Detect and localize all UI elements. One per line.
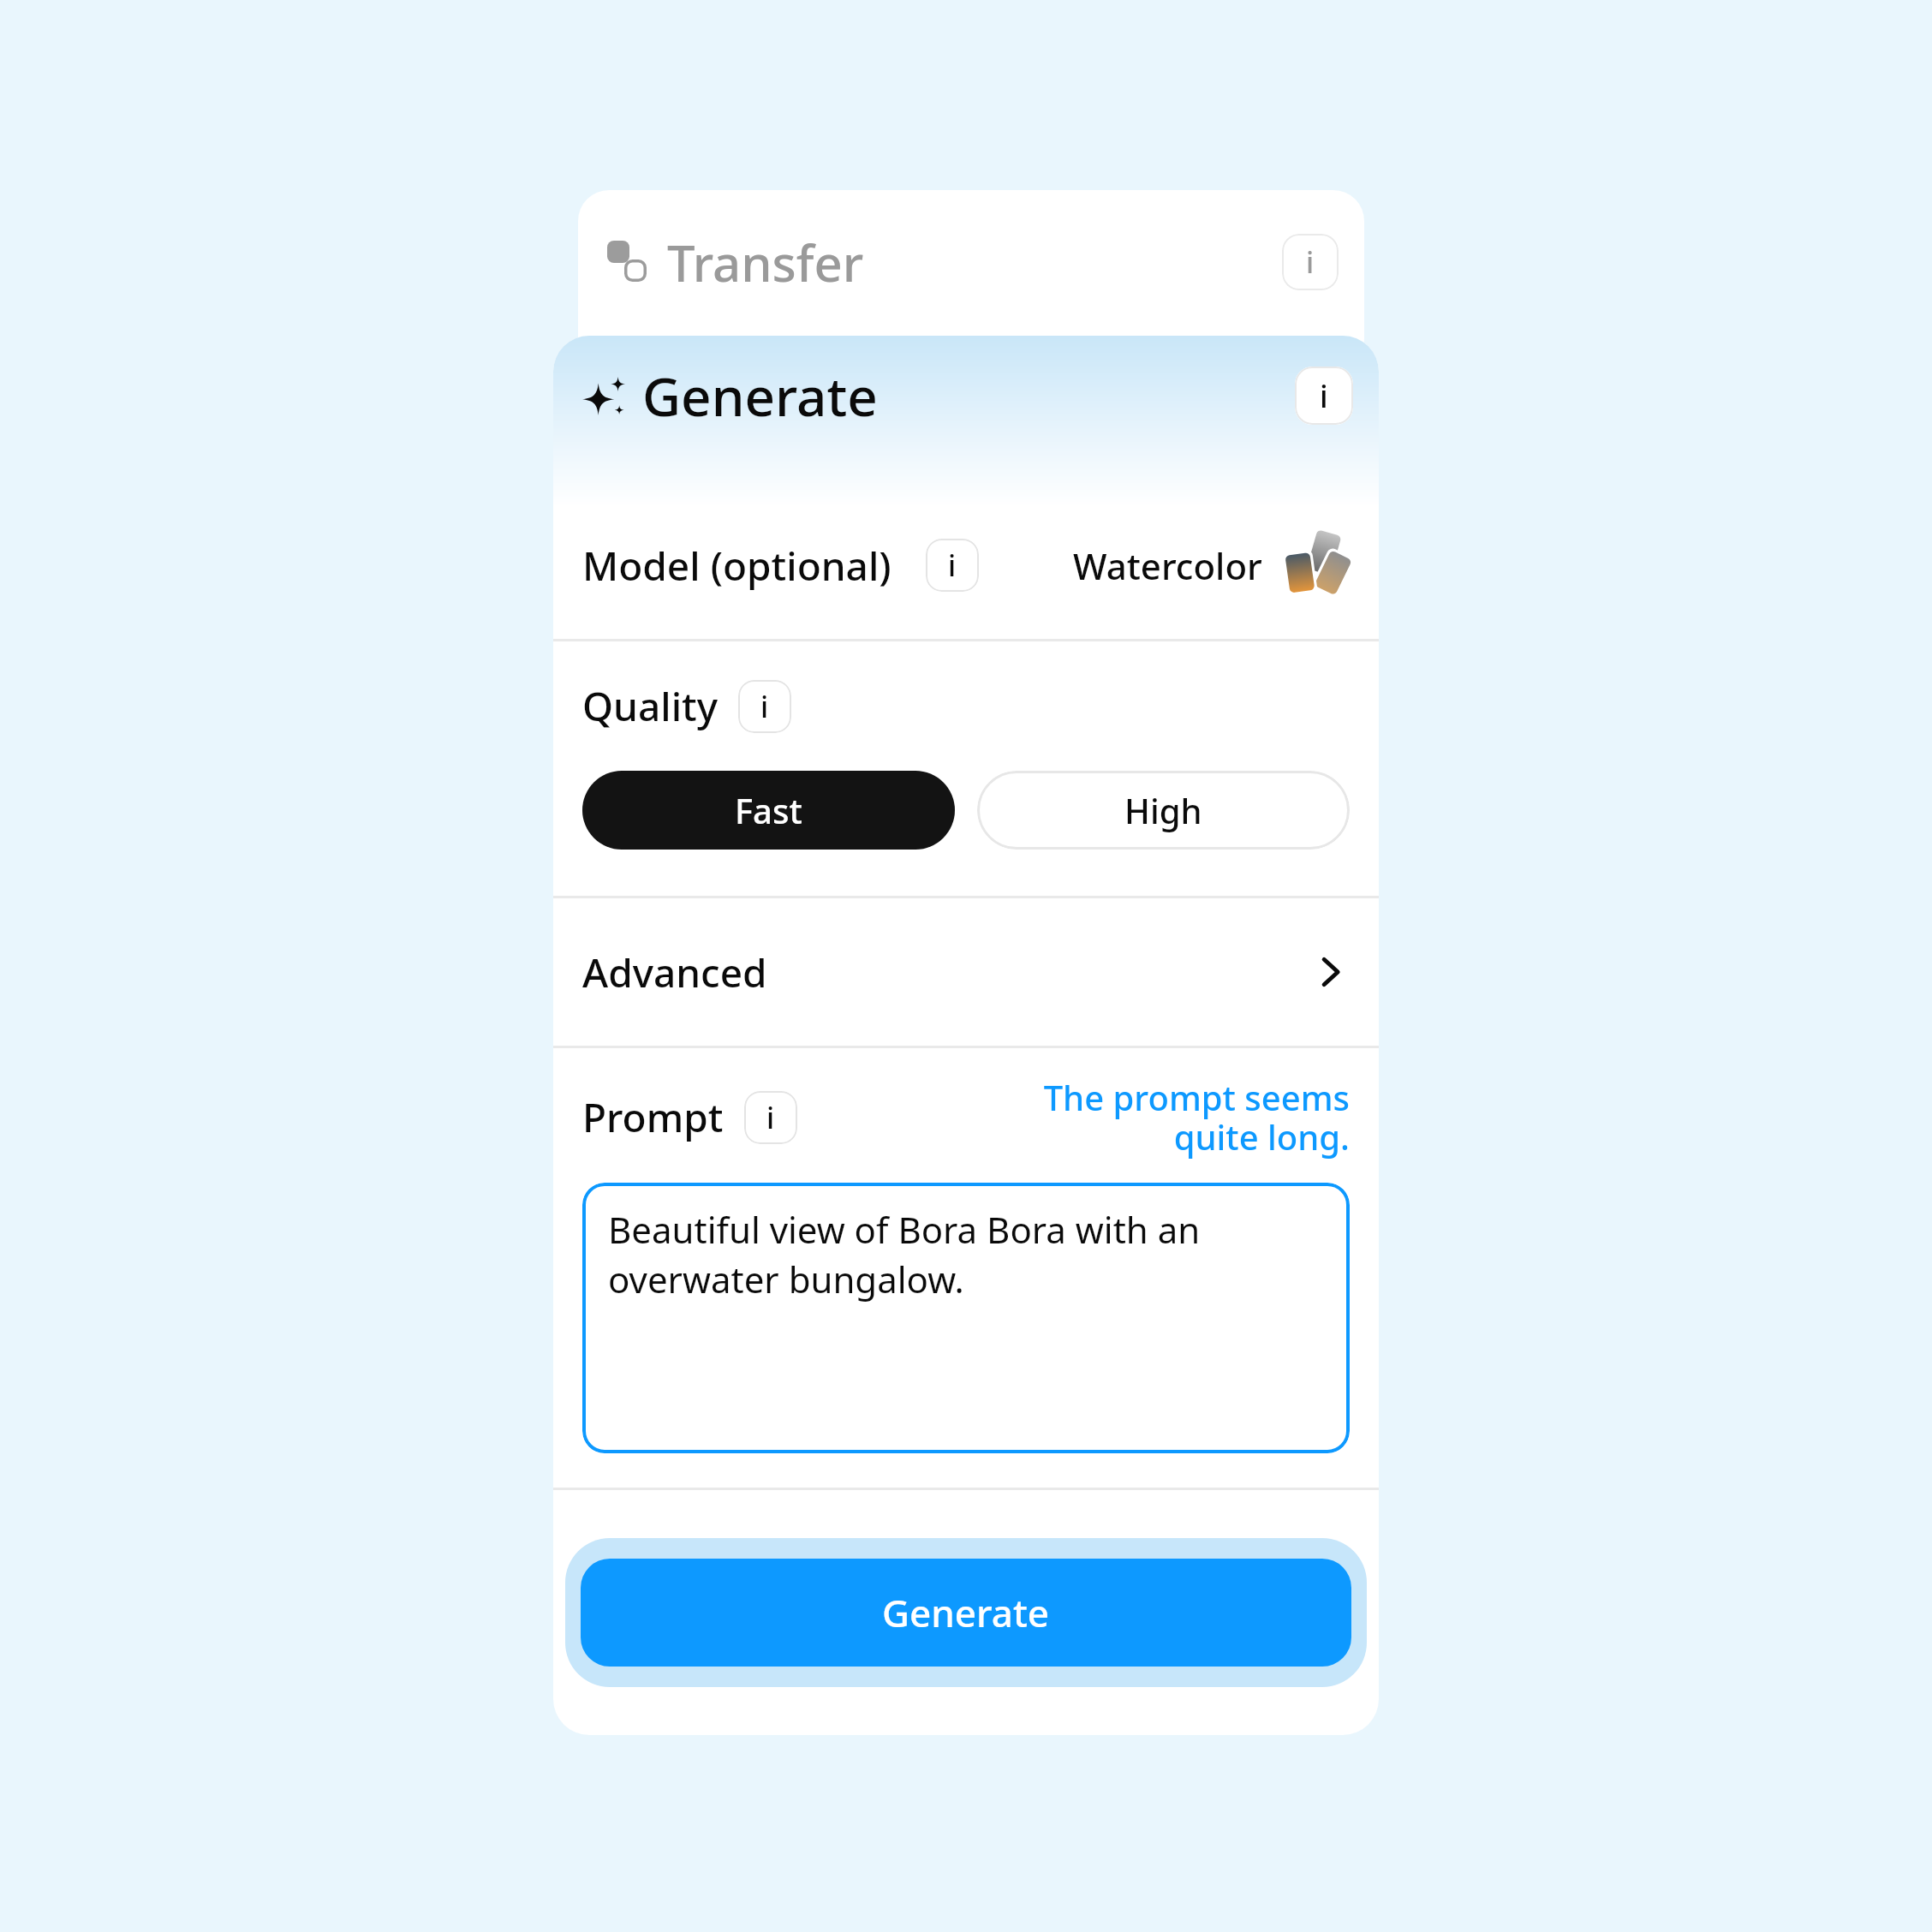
button[interactable]: Advanced bbox=[553, 898, 1379, 1046]
staticText: Generate bbox=[882, 1587, 1050, 1638]
button[interactable]: Beautiful view of Bora Bora with an over… bbox=[582, 1183, 1350, 1453]
button[interactable]: More information bbox=[744, 1091, 797, 1144]
other: Open advanced bbox=[1310, 952, 1350, 992]
staticText: i bbox=[1320, 375, 1328, 417]
button[interactable]: Fast bbox=[582, 771, 955, 850]
staticText: Advanced bbox=[582, 945, 767, 999]
button[interactable]: High bbox=[977, 771, 1350, 850]
staticText: i bbox=[948, 546, 957, 585]
staticText: Prompt bbox=[582, 1090, 724, 1144]
staticText: i bbox=[766, 1098, 775, 1137]
staticText: Model (optional) bbox=[582, 539, 891, 593]
staticText: Beautiful view of Bora Bora with an over… bbox=[608, 1205, 1331, 1303]
button[interactable]: More information bbox=[738, 680, 791, 733]
staticText: High bbox=[1124, 787, 1202, 833]
button[interactable]: More information bbox=[1295, 367, 1353, 425]
button[interactable]: More information bbox=[926, 539, 979, 592]
staticText: Generate bbox=[642, 360, 878, 432]
staticText: Quality bbox=[582, 679, 718, 733]
staticText: Transfer bbox=[667, 229, 864, 296]
button[interactable]: Transfer bbox=[578, 190, 1364, 370]
button[interactable]: Model (optional) bbox=[553, 510, 1379, 620]
staticText: Watercolor bbox=[1073, 541, 1262, 590]
staticText: i bbox=[760, 687, 769, 726]
staticText: i bbox=[1306, 242, 1315, 282]
button[interactable]: Generate bbox=[581, 1559, 1351, 1667]
button[interactable]: More information bbox=[1282, 234, 1339, 290]
staticText: The prompt seems quite long. bbox=[1043, 1074, 1350, 1160]
staticText: Fast bbox=[735, 787, 802, 833]
